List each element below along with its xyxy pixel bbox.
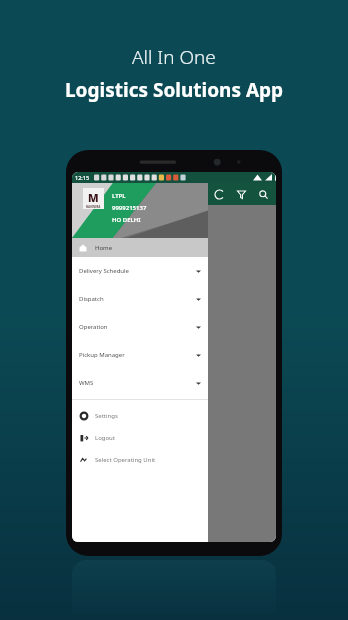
button[interactable]: Dispatch <box>72 285 208 313</box>
button[interactable]: Home <box>72 238 208 257</box>
staticText: HO DELHI <box>112 216 141 224</box>
button[interactable]: Pickup Manager <box>72 341 208 369</box>
staticText: Operation <box>79 323 108 331</box>
button[interactable]: WMS <box>72 369 208 397</box>
staticText: 9999215137 <box>112 204 147 212</box>
staticText: Select Operating Unit <box>95 456 156 464</box>
staticText: Settings <box>95 412 118 420</box>
staticText: LTPL <box>112 192 126 200</box>
button[interactable]: Refresh <box>208 183 230 205</box>
staticText: M <box>88 190 99 205</box>
staticText: Logout <box>95 434 115 442</box>
button[interactable]: Operation <box>72 313 208 341</box>
button[interactable]: Settings <box>72 405 208 427</box>
button[interactable]: Filter <box>230 183 252 205</box>
button[interactable]: Logout <box>72 427 208 449</box>
staticText: All In One <box>132 44 216 70</box>
button[interactable]: Search <box>252 183 274 205</box>
staticText: Dispatch <box>79 295 104 303</box>
staticText: Delivery Schedule <box>79 267 129 275</box>
staticText: 12:15 <box>75 174 90 181</box>
staticText: Pickup Manager <box>79 351 125 359</box>
staticText: Home <box>95 244 113 252</box>
button[interactable]: Select Operating Unit <box>72 449 208 471</box>
button[interactable]: Delivery Schedule <box>72 257 208 285</box>
staticText: WMS <box>79 379 94 387</box>
staticText: MAHINDRA <box>86 205 101 208</box>
staticText: Logistics Solutions App <box>65 77 284 103</box>
